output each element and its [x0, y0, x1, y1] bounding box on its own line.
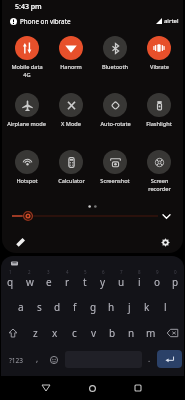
button[interactable]: Hanorm: [49, 34, 93, 91]
button[interactable]: k: [138, 294, 156, 320]
staticText: 8: [138, 269, 141, 275]
button[interactable]: Auto-rotate: [93, 91, 137, 148]
staticText: 7: [120, 269, 123, 275]
staticText: d: [54, 300, 61, 314]
staticText: w: [26, 275, 34, 289]
button[interactable]: 4: [58, 267, 76, 293]
staticText: o: [154, 275, 161, 289]
button[interactable]: f: [66, 294, 84, 320]
button[interactable]: Vibrate: [137, 34, 181, 91]
staticText: j: [128, 300, 131, 314]
staticText: e: [46, 275, 52, 289]
button[interactable]: Airplane mode: [4, 91, 49, 148]
button[interactable]: Mobile data 4G: [4, 34, 49, 91]
staticText: Phone on vibrate: [20, 17, 71, 26]
button[interactable]: 1: [1, 267, 20, 293]
button[interactable]: 7: [112, 267, 130, 293]
button[interactable]: Comma: [30, 348, 44, 372]
staticText: 2: [28, 269, 31, 275]
staticText: k: [144, 300, 150, 314]
staticText: h: [108, 300, 115, 314]
button[interactable]: Calculator: [49, 148, 93, 205]
button[interactable]: Flashlight: [137, 91, 181, 148]
staticText: b: [109, 326, 116, 340]
button[interactable]: h: [102, 294, 120, 320]
staticText: c: [72, 326, 77, 340]
staticText: Hotspot: [16, 177, 38, 185]
staticText: 5:43 pm: [15, 2, 42, 12]
button[interactable]: Shift: [1, 320, 25, 346]
button[interactable]: b: [103, 320, 122, 346]
button[interactable]: Recents: [127, 377, 149, 399]
button[interactable]: Backspace: [160, 320, 184, 346]
button[interactable]: v: [84, 320, 103, 346]
button[interactable]: 2: [20, 267, 39, 293]
button[interactable]: Bluetooth: [93, 34, 137, 91]
button[interactable]: a: [11, 294, 30, 320]
staticText: x: [52, 326, 58, 340]
button[interactable]: Hotspot: [4, 148, 49, 205]
button[interactable]: 9: [148, 267, 166, 293]
staticText: Airplane mode: [7, 120, 46, 128]
staticText: n: [128, 326, 135, 340]
button[interactable]: ?123: [4, 348, 28, 372]
button[interactable]: x: [45, 320, 65, 346]
staticText: Screen recorder: [148, 177, 171, 193]
button[interactable]: z: [25, 320, 45, 346]
staticText: m: [146, 326, 156, 340]
staticText: p: [172, 275, 179, 289]
staticText: r: [65, 275, 70, 289]
staticText: Vibrate: [150, 63, 169, 71]
button[interactable]: 0: [166, 267, 184, 293]
button[interactable]: X Mode: [49, 91, 93, 148]
staticText: y: [100, 275, 106, 289]
button[interactable]: g: [84, 294, 102, 320]
button[interactable]: c: [65, 320, 84, 346]
staticText: airtel: [164, 17, 179, 25]
staticText: ,: [36, 353, 39, 364]
button[interactable]: s: [30, 294, 48, 320]
staticText: Screenshot: [100, 177, 130, 185]
button[interactable]: 5: [76, 267, 94, 293]
button[interactable]: 6: [94, 267, 112, 293]
button[interactable]: l: [156, 294, 174, 320]
button[interactable]: Expand: [159, 209, 173, 223]
button[interactable]: Keyboard settings: [8, 257, 20, 269]
staticText: a: [18, 300, 24, 314]
button[interactable]: Emoji: [46, 348, 62, 372]
button[interactable]: Back: [35, 377, 57, 399]
staticText: 6: [102, 269, 105, 275]
button[interactable]: Screenshot: [93, 148, 137, 205]
staticText: Calculator: [58, 177, 85, 185]
staticText: 5: [84, 269, 87, 275]
button[interactable]: Settings: [158, 235, 172, 249]
staticText: Bluetooth: [102, 63, 128, 71]
button[interactable]: Screen recorder: [137, 148, 181, 205]
staticText: 0: [174, 269, 177, 275]
button[interactable]: 8: [130, 267, 148, 293]
staticText: t: [83, 275, 87, 289]
staticText: l: [164, 300, 167, 314]
button[interactable]: d: [48, 294, 66, 320]
staticText: ?123: [9, 356, 23, 365]
button[interactable]: Edit tiles: [13, 235, 27, 249]
staticText: 3: [47, 269, 50, 275]
button[interactable]: Home: [81, 377, 103, 399]
staticText: Auto-rotate: [100, 120, 131, 128]
button[interactable]: Period: [143, 348, 155, 372]
staticText: f: [73, 300, 77, 314]
staticText: 4: [66, 269, 69, 275]
staticText: 1: [9, 269, 12, 275]
button[interactable]: n: [122, 320, 141, 346]
staticText: i: [138, 275, 141, 289]
staticText: q: [7, 275, 14, 289]
staticText: Hanorm: [60, 63, 82, 71]
button[interactable]: Enter: [157, 350, 182, 368]
button[interactable]: m: [141, 320, 160, 346]
staticText: s: [37, 300, 42, 314]
button[interactable]: 3: [39, 267, 58, 293]
staticText: 9: [156, 269, 159, 275]
staticText: z: [33, 326, 38, 340]
button[interactable]: j: [120, 294, 138, 320]
